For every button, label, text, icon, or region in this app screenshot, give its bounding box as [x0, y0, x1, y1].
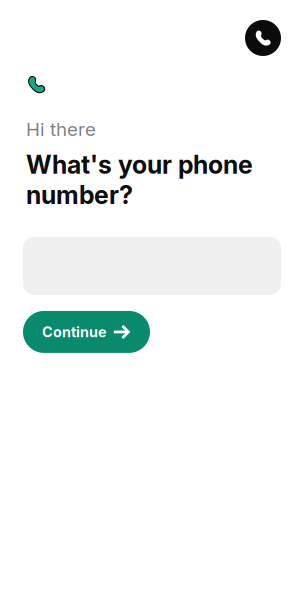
- staticText: What's your phone number?: [26, 150, 253, 210]
- button[interactable]: Call: [245, 20, 281, 56]
- button[interactable]: Continue: [23, 311, 150, 353]
- staticText: Hi there: [26, 118, 96, 141]
- staticText: Continue: [42, 323, 107, 341]
